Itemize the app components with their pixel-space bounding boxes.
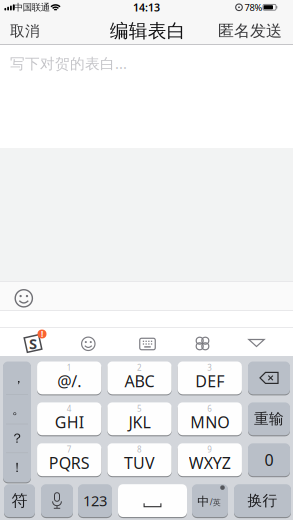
staticText: ! xyxy=(41,329,43,339)
button[interactable]: 6 xyxy=(178,402,242,435)
staticText: 中 xyxy=(197,494,209,509)
button[interactable] xyxy=(248,361,290,394)
staticText: ！ xyxy=(10,459,23,476)
button[interactable] xyxy=(248,339,265,347)
staticText: JKL xyxy=(128,411,150,433)
staticText: S xyxy=(29,334,37,353)
button[interactable] xyxy=(80,335,97,352)
button[interactable]: 3 xyxy=(178,361,242,394)
staticText: MNO xyxy=(190,411,229,433)
button[interactable]: 匿名发送 xyxy=(218,21,282,41)
staticText: 0 xyxy=(264,449,273,470)
button[interactable]: 取消 xyxy=(10,22,40,40)
staticText: PQRS xyxy=(49,452,90,473)
staticText: 1 xyxy=(67,362,72,373)
staticText: 中国联通 xyxy=(14,2,50,13)
button[interactable] xyxy=(118,484,187,517)
button[interactable]: S xyxy=(18,330,48,356)
button[interactable]: 8 xyxy=(107,443,172,476)
staticText: GHI xyxy=(55,411,84,433)
button[interactable]: 0 xyxy=(248,443,290,476)
staticText: 5 xyxy=(137,403,142,414)
staticText: 编辑表白 xyxy=(110,19,186,42)
staticText: 14:13 xyxy=(133,0,160,14)
staticText: ， xyxy=(12,370,25,386)
staticText: 4 xyxy=(67,403,72,414)
staticText: ？ xyxy=(10,430,23,447)
button[interactable]: 5 xyxy=(107,402,172,435)
button[interactable]: 换行 xyxy=(234,484,291,517)
button[interactable] xyxy=(195,336,209,350)
staticText: 重输 xyxy=(254,410,284,428)
button[interactable]: 2 xyxy=(107,361,172,394)
button[interactable] xyxy=(14,288,34,308)
staticText: 3 xyxy=(207,362,212,373)
button[interactable]: 符 xyxy=(4,484,35,517)
button[interactable]: ， xyxy=(3,361,31,482)
staticText: 2 xyxy=(137,362,142,373)
button[interactable]: 9 xyxy=(178,443,242,476)
button[interactable]: 4 xyxy=(37,402,101,435)
staticText: 写下对贺的表白... xyxy=(10,54,127,73)
staticText: 匿名发送 xyxy=(218,21,282,41)
staticText: 9 xyxy=(207,444,212,455)
button[interactable]: 中 xyxy=(192,484,228,517)
staticText: ABC xyxy=(124,370,154,392)
button[interactable]: 重输 xyxy=(248,402,290,435)
staticText: 取消 xyxy=(10,22,40,40)
staticText: 123 xyxy=(83,491,107,510)
staticText: @/. xyxy=(57,370,81,392)
staticText: 6 xyxy=(207,403,212,414)
staticText: WXYZ xyxy=(189,452,231,473)
staticText: DEF xyxy=(195,370,224,392)
button[interactable]: 7 xyxy=(37,443,101,476)
staticText: 8 xyxy=(137,444,142,455)
button[interactable] xyxy=(138,337,156,351)
button[interactable]: 1 xyxy=(37,361,101,394)
staticText: /英 xyxy=(210,497,221,507)
staticText: 78% xyxy=(244,1,262,13)
button[interactable] xyxy=(41,484,73,517)
staticText: 换行 xyxy=(247,492,277,510)
staticText: 。 xyxy=(12,401,25,417)
button[interactable]: 123 xyxy=(78,484,112,517)
staticText: 符 xyxy=(11,491,27,510)
staticText: TUV xyxy=(124,452,155,473)
staticText: 7 xyxy=(67,444,72,455)
